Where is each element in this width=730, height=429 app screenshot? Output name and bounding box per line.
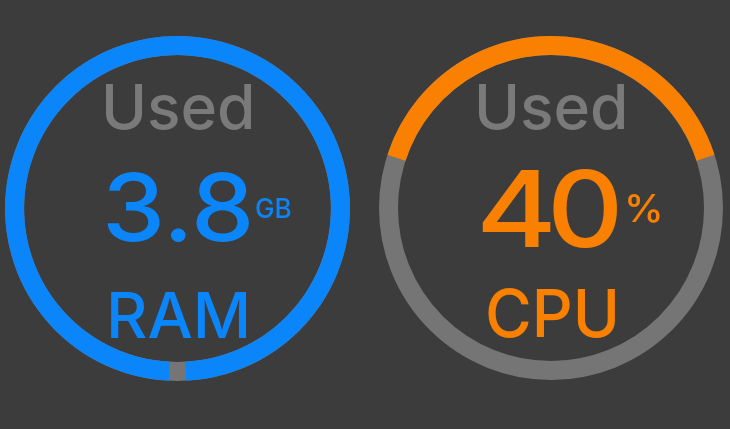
button[interactable]: CPU: 40 percent used: [379, 36, 723, 380]
staticText: 0: [547, 145, 623, 272]
staticText: RAM: [106, 277, 252, 353]
staticText: %: [624, 185, 664, 232]
staticText: Used: [101, 69, 256, 144]
staticText: CPU: [485, 274, 621, 353]
button[interactable]: RAM: 3.8 GB used: [5, 36, 350, 381]
staticText: GB: [255, 192, 292, 224]
staticText: Used: [474, 69, 629, 144]
staticText: 4: [476, 145, 558, 272]
staticText: 3.8: [102, 150, 255, 264]
